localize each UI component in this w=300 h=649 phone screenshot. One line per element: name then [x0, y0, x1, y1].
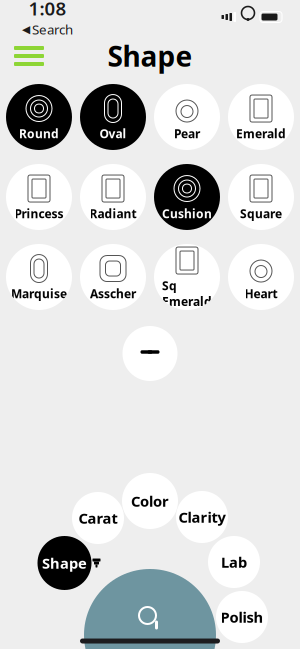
button[interactable]: Clarity	[176, 491, 228, 543]
staticText: Polish	[220, 607, 263, 627]
button[interactable]: Marquise	[6, 244, 72, 310]
button[interactable]: Round	[6, 84, 72, 150]
button[interactable]: Cushion	[154, 164, 220, 230]
button[interactable]: Asscher	[80, 244, 146, 310]
button[interactable]: Heart	[228, 244, 294, 310]
staticText: Color	[131, 491, 169, 511]
staticText: Carat	[78, 508, 117, 528]
button[interactable]: Polish	[216, 591, 268, 643]
staticText: Radiant	[89, 205, 136, 221]
button[interactable]: Lab	[208, 536, 260, 588]
staticText: Round	[19, 125, 59, 141]
button[interactable]: Menu	[6, 38, 52, 74]
button[interactable]: Square	[228, 164, 294, 230]
staticText: Lab	[221, 552, 247, 572]
button[interactable]: Princess	[6, 164, 72, 230]
staticText: Sq Emerald	[162, 278, 212, 309]
button[interactable]: Emerald	[228, 84, 294, 150]
button[interactable]: Show more shapes	[122, 326, 177, 381]
button[interactable]: Oval	[80, 84, 146, 150]
staticText: Emerald	[236, 125, 286, 141]
staticText: Princess	[14, 205, 63, 221]
button[interactable]: Color	[122, 473, 178, 529]
staticText: Clarity	[178, 507, 225, 527]
staticText: Oval	[99, 125, 126, 141]
staticText: Shape	[107, 37, 192, 75]
staticText: Asscher	[90, 285, 136, 301]
button[interactable]: Shape	[37, 536, 91, 590]
staticText: Square	[240, 205, 282, 221]
button[interactable]: Search	[84, 569, 216, 649]
staticText: Cushion	[162, 205, 212, 221]
button[interactable]: Carat	[72, 492, 124, 544]
button[interactable]: Radiant	[80, 164, 146, 230]
button[interactable]: Sq Emerald	[154, 244, 220, 310]
staticText: Search	[32, 20, 73, 38]
staticText: Heart	[244, 285, 277, 301]
staticText: Pear	[174, 125, 200, 141]
button[interactable]: Pear	[154, 84, 220, 150]
staticText: Marquise	[11, 285, 67, 301]
staticText: 1:08	[28, 0, 66, 21]
staticText: Shape	[42, 553, 87, 573]
staticText: ◀	[22, 23, 30, 35]
